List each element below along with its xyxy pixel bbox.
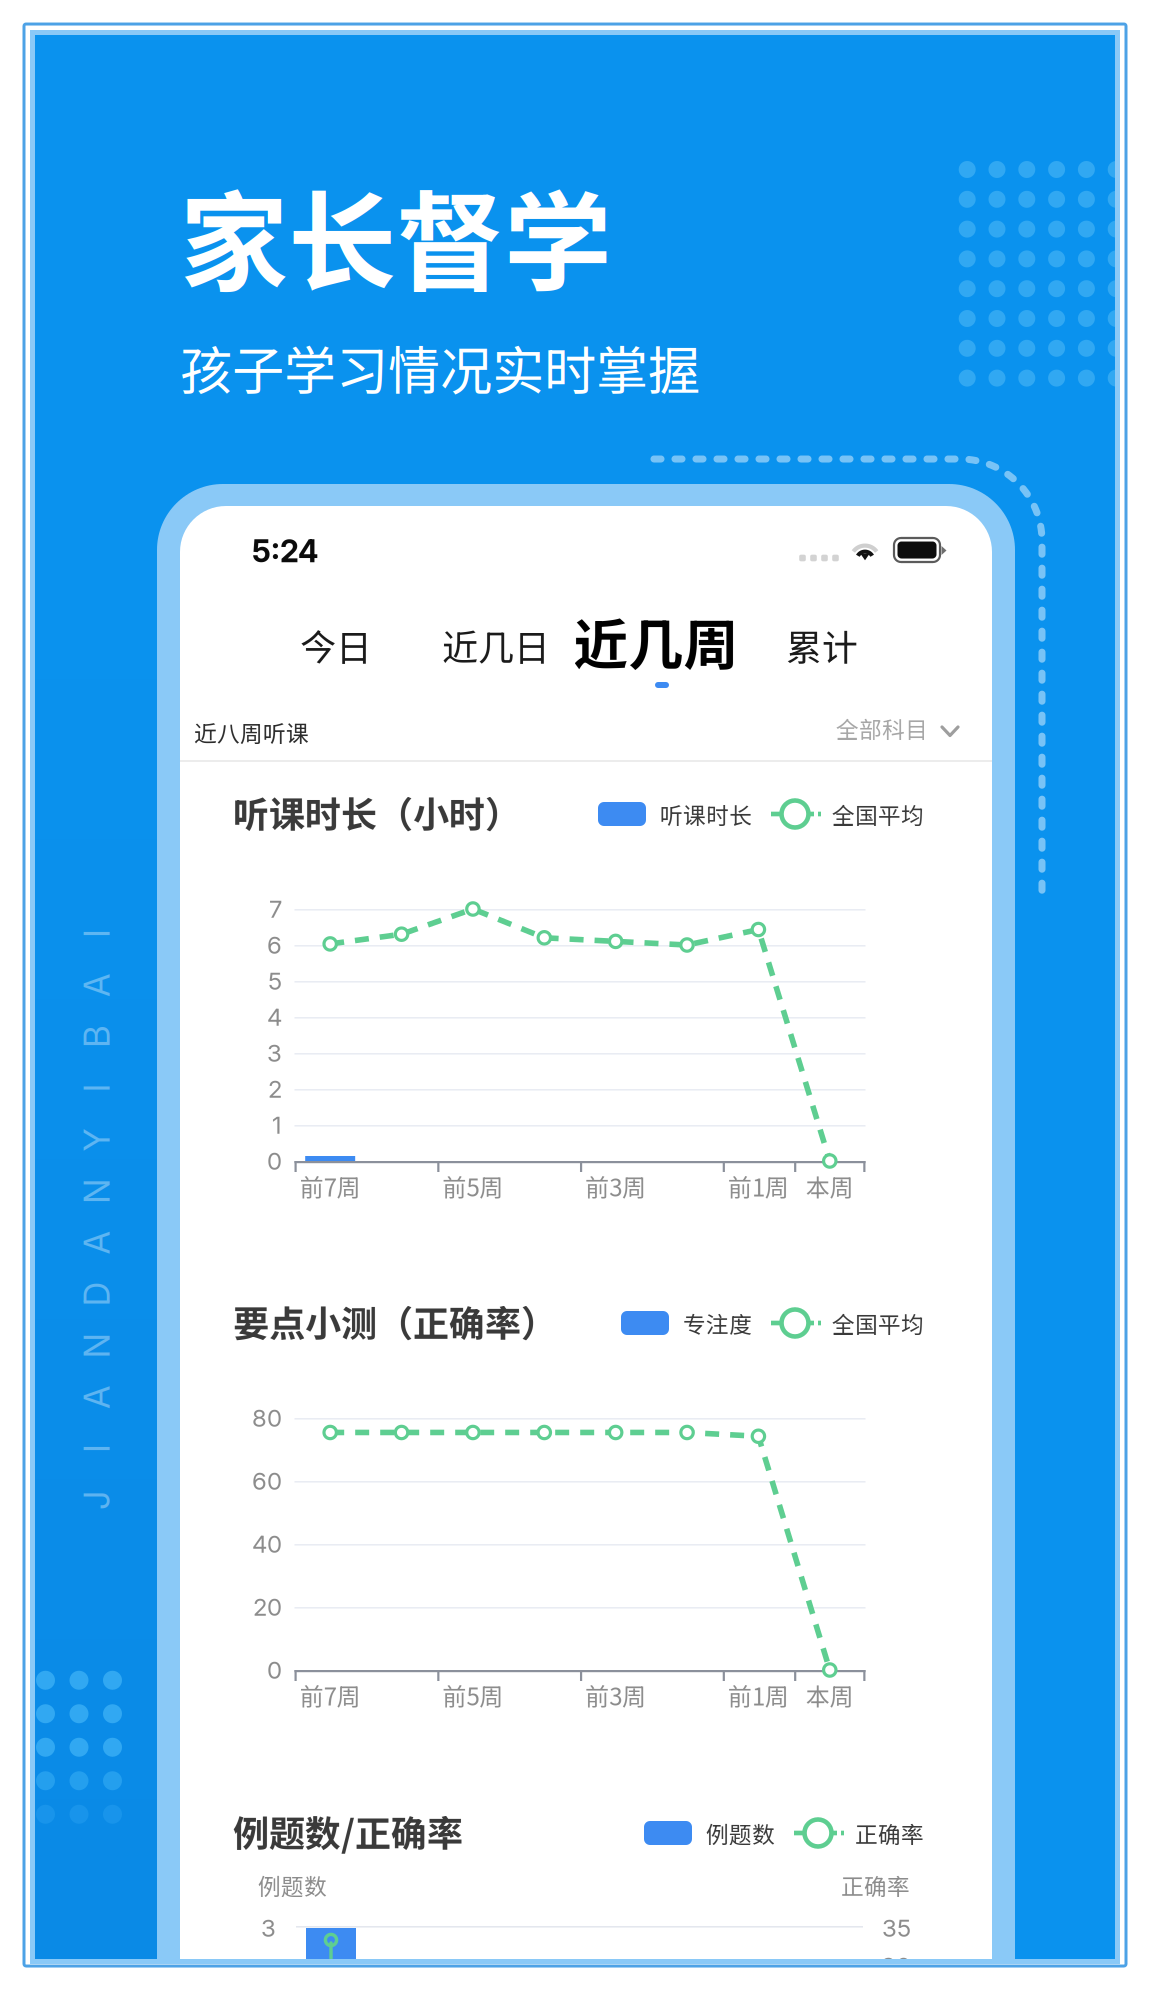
button[interactable]: 全部科目: [720, 706, 964, 758]
button[interactable]: 近几日: [430, 611, 562, 679]
staticText: 前1周: [728, 1678, 789, 1712]
staticText: 前5周: [442, 1678, 503, 1712]
staticText: 要点小测（正确率）: [233, 1295, 557, 1347]
staticText: 近几周: [573, 601, 738, 681]
staticText: 前3周: [585, 1169, 646, 1203]
staticText: 正确率: [841, 1869, 910, 1901]
staticText: 本周: [806, 1678, 854, 1712]
staticText: 2: [268, 1074, 282, 1103]
staticText: 孩子学习情况实时掌握: [180, 329, 700, 405]
staticText: A: [85, 1376, 108, 1418]
staticText: 7: [269, 894, 282, 923]
staticText: 听课时长: [660, 798, 752, 830]
staticText: 40: [252, 1529, 282, 1558]
staticText: 今日: [300, 619, 372, 671]
staticText: A: [85, 964, 108, 1006]
staticText: 全国平均: [832, 1307, 924, 1339]
staticText: 例题数/正确率: [233, 1805, 463, 1857]
staticText: 近几日: [442, 619, 550, 671]
staticText: A: [85, 1222, 108, 1264]
staticText: 全国平均: [832, 798, 924, 830]
staticText: 本周: [806, 1169, 854, 1203]
staticText: 5: [268, 966, 282, 995]
staticText: D: [85, 1273, 109, 1315]
staticText: 例题数: [258, 1869, 327, 1901]
staticText: N: [84, 1325, 109, 1367]
staticText: 前5周: [442, 1169, 503, 1203]
staticText: 30: [881, 1951, 911, 1980]
staticText: 家长督学: [180, 157, 612, 313]
button[interactable]: 今日: [280, 611, 392, 679]
button[interactable]: 累计: [766, 611, 878, 679]
staticText: 3: [267, 1038, 282, 1067]
staticText: 6: [267, 930, 282, 959]
button[interactable]: 近几周: [566, 606, 746, 698]
staticText: 前3周: [585, 1678, 646, 1712]
staticText: I: [93, 1067, 101, 1109]
staticText: 20: [253, 1592, 282, 1621]
staticText: Y: [85, 1119, 108, 1161]
staticText: 4: [267, 1002, 282, 1031]
staticText: 3: [261, 1913, 276, 1942]
staticText: 0: [267, 1655, 282, 1684]
staticText: I: [93, 1428, 101, 1470]
staticText: 80: [252, 1403, 282, 1432]
staticText: 专注度: [683, 1307, 752, 1339]
staticText: N: [84, 1170, 109, 1212]
staticText: 正确率: [855, 1817, 924, 1849]
staticText: 前7周: [300, 1169, 361, 1203]
staticText: 全部科目: [836, 712, 928, 744]
staticText: 5:24: [252, 532, 318, 569]
staticText: 例题数: [706, 1817, 775, 1849]
staticText: I: [93, 913, 101, 955]
staticText: 听课时长（小时）: [233, 786, 521, 838]
staticText: 累计: [786, 619, 858, 671]
staticText: 35: [882, 1913, 911, 1942]
staticText: B: [86, 1016, 108, 1058]
staticText: 近八周听课: [194, 716, 309, 748]
staticText: J: [87, 1479, 106, 1521]
staticText: 前1周: [728, 1169, 789, 1203]
staticText: 1: [272, 1110, 282, 1139]
staticText: 60: [252, 1466, 282, 1495]
staticText: 前7周: [300, 1678, 361, 1712]
staticText: 0: [267, 1146, 282, 1175]
